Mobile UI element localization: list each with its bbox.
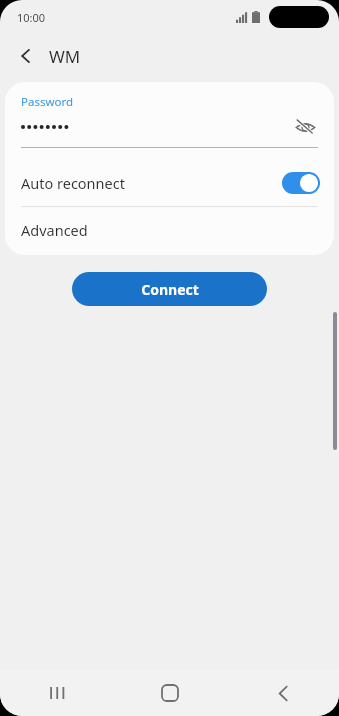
- button[interactable]: Auto reconnect: [5, 160, 334, 206]
- staticText: WM: [49, 45, 81, 68]
- button[interactable]: Home: [113, 670, 226, 716]
- button[interactable]: Back: [8, 38, 44, 74]
- staticText: 10:00: [17, 10, 46, 25]
- staticText: Connect: [141, 280, 199, 299]
- staticText: Advanced: [21, 220, 88, 240]
- button[interactable]: Password: [5, 82, 334, 160]
- button[interactable]: Recent apps: [0, 670, 113, 716]
- button[interactable]: Auto reconnect toggle: [282, 172, 320, 194]
- button[interactable]: Connect: [72, 272, 267, 306]
- button[interactable]: Show password: [290, 112, 320, 142]
- button[interactable]: Back: [226, 670, 339, 716]
- staticText: Password: [21, 94, 74, 110]
- button[interactable]: Advanced: [5, 207, 334, 252]
- staticText: Auto reconnect: [21, 173, 125, 193]
